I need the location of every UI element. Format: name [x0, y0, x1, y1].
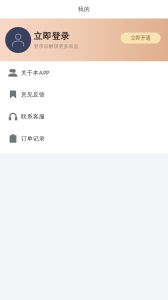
button[interactable]: 立即开通	[121, 32, 161, 43]
button[interactable]: 联系客服	[0, 105, 168, 127]
button[interactable]: 关于本APP	[0, 61, 168, 83]
staticText: 联系客服	[21, 113, 45, 120]
staticText: 关于本APP	[21, 69, 49, 76]
button[interactable]: 意见反馈	[0, 83, 168, 105]
staticText: 登录后解锁更多权益	[34, 43, 79, 49]
staticText: 订单记录	[21, 135, 45, 142]
staticText: 意见反馈	[21, 91, 45, 98]
staticText: 立即开通	[131, 35, 151, 41]
staticText: 我的	[78, 6, 90, 13]
staticText: 立即登录	[34, 31, 70, 42]
button[interactable]: 订单记录	[0, 127, 168, 149]
